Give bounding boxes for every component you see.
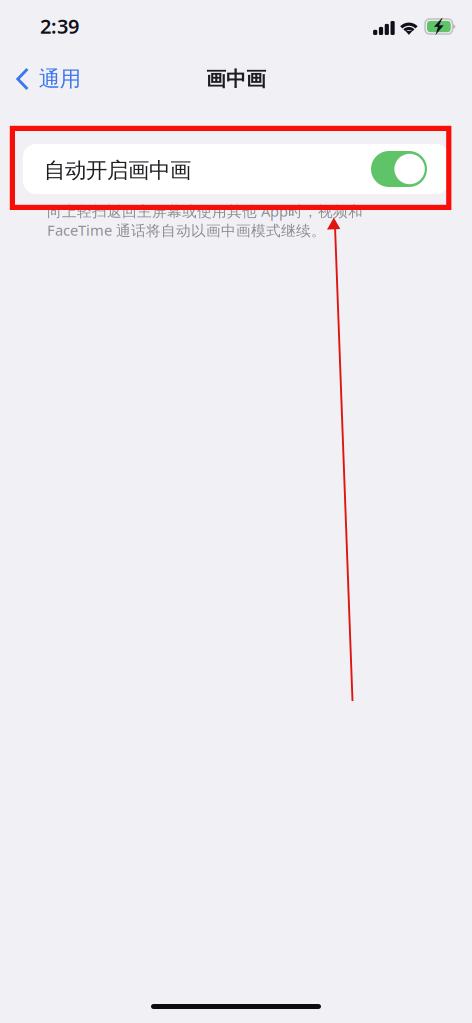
staticText: 向上轻扫返回主屏幕或使用其他 App时，视频和 [47,201,363,221]
staticText: 画中画 [206,67,266,91]
staticText: FaceTime 通话将自动以画中画模式继续。 [47,220,326,240]
staticText: 自动开启画中画 [44,157,191,184]
button[interactable]: 自动开启画中画 [23,144,449,194]
staticText: 2:39 [40,13,79,39]
staticText: 通用 [39,66,81,92]
button[interactable]: 自动开启画中画 [371,151,427,187]
button[interactable]: 通用 [0,58,93,100]
